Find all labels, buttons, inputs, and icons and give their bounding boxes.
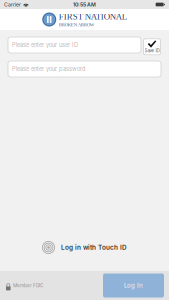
staticText: Please enter your user ID xyxy=(12,41,78,48)
button[interactable]: Log in with Touch ID xyxy=(42,241,127,254)
staticText: FIRST NATIONAL xyxy=(59,12,127,21)
staticText: Log in with Touch ID xyxy=(61,244,127,251)
staticText: Member FDIC xyxy=(13,283,43,288)
staticText: Please enter your password xyxy=(12,65,86,72)
staticText: Log In xyxy=(124,282,143,289)
staticText: BROKEN ARROW xyxy=(59,22,95,27)
staticText: Save ID xyxy=(144,48,159,53)
button[interactable]: Log In xyxy=(103,273,164,297)
staticText: 10:55 AM xyxy=(73,1,96,8)
staticText: Carrier xyxy=(4,1,21,8)
button[interactable]: Save ID xyxy=(143,39,160,55)
